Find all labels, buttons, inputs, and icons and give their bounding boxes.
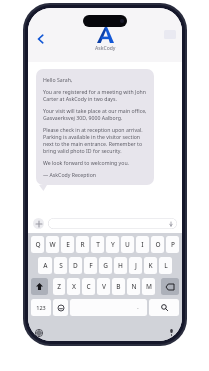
button[interactable]: W bbox=[46, 236, 59, 253]
button[interactable]: O bbox=[151, 236, 164, 253]
button[interactable]: Add attachment bbox=[33, 218, 44, 229]
button[interactable]: J bbox=[129, 257, 142, 274]
staticText: Please check in at reception upon arriva… bbox=[43, 126, 147, 154]
staticText: I bbox=[141, 240, 144, 249]
button[interactable]: 123 bbox=[31, 299, 51, 316]
button[interactable]: Emoji bbox=[53, 299, 68, 316]
staticText: Y bbox=[111, 240, 115, 249]
button[interactable]: Q bbox=[31, 236, 44, 253]
staticText: O bbox=[155, 240, 161, 249]
staticText: 123 bbox=[36, 304, 46, 311]
staticText: — AskCody Reception bbox=[43, 171, 97, 178]
button[interactable] bbox=[48, 218, 177, 229]
button[interactable]: Change keyboard bbox=[34, 328, 43, 337]
staticText: E bbox=[66, 240, 70, 249]
button[interactable]: G bbox=[99, 257, 112, 274]
staticText: Q bbox=[35, 240, 41, 249]
button[interactable]: Search bbox=[149, 299, 179, 316]
staticText: You are registered for a meeting with Jo… bbox=[43, 88, 147, 102]
staticText: D bbox=[73, 261, 78, 270]
button[interactable]: Z bbox=[53, 278, 65, 295]
button[interactable]: F bbox=[84, 257, 97, 274]
staticText: We look forward to welcoming you. bbox=[43, 159, 130, 166]
staticText: R bbox=[80, 240, 85, 249]
button[interactable]: C bbox=[82, 278, 95, 295]
staticText: Hello Sarah, bbox=[43, 76, 73, 83]
button[interactable]: E bbox=[61, 236, 74, 253]
staticText: Your visit will take place at our main o… bbox=[43, 107, 147, 121]
staticText: G bbox=[103, 261, 108, 270]
button[interactable]: L bbox=[159, 257, 172, 274]
button[interactable]: I bbox=[136, 236, 149, 253]
button[interactable]: Backspace bbox=[161, 278, 179, 295]
staticText: U bbox=[125, 240, 130, 249]
button[interactable]: A bbox=[38, 257, 52, 274]
staticText: L bbox=[164, 261, 168, 270]
button[interactable]: Hello Sarah, bbox=[36, 69, 154, 185]
button[interactable]: H bbox=[114, 257, 127, 274]
staticText: C bbox=[86, 282, 91, 291]
staticText: P bbox=[171, 240, 175, 249]
staticText: J bbox=[135, 261, 137, 270]
button[interactable]: T bbox=[91, 236, 104, 253]
staticText: W bbox=[49, 240, 56, 249]
staticText: B bbox=[116, 282, 121, 291]
button[interactable]: X bbox=[67, 278, 80, 295]
button[interactable]: U bbox=[121, 236, 134, 253]
staticText: . bbox=[137, 304, 139, 311]
staticText: T bbox=[96, 240, 100, 249]
button[interactable]: Shift bbox=[31, 278, 48, 295]
staticText: AskCody bbox=[95, 45, 116, 52]
button[interactable]: V bbox=[97, 278, 110, 295]
staticText: K bbox=[148, 261, 153, 270]
button[interactable]: S bbox=[54, 257, 67, 274]
button[interactable]: Dictate bbox=[167, 328, 176, 337]
button[interactable]: R bbox=[76, 236, 89, 253]
button[interactable]: B bbox=[112, 278, 125, 295]
button[interactable]: N bbox=[127, 278, 140, 295]
button[interactable]: D bbox=[69, 257, 82, 274]
staticText: N bbox=[131, 282, 137, 291]
staticText: F bbox=[89, 261, 93, 270]
button[interactable]: Back bbox=[32, 30, 50, 48]
staticText: A bbox=[43, 261, 48, 270]
staticText: V bbox=[102, 282, 106, 291]
staticText: H bbox=[118, 261, 123, 270]
staticText: M bbox=[146, 282, 152, 291]
button[interactable]: Y bbox=[106, 236, 119, 253]
staticText: Z bbox=[57, 282, 61, 291]
button[interactable]: M bbox=[142, 278, 155, 295]
staticText: S bbox=[59, 261, 63, 270]
button[interactable]: K bbox=[144, 257, 157, 274]
button[interactable]: P bbox=[166, 236, 179, 253]
staticText: X bbox=[72, 282, 76, 291]
